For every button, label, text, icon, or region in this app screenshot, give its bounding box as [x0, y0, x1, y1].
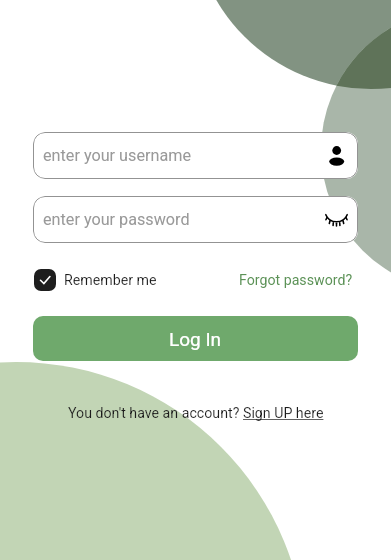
- staticText: Log In: [169, 328, 222, 350]
- button[interactable]: Remember me: [34, 269, 157, 291]
- button[interactable]: Log In: [33, 316, 358, 361]
- staticText: enter your username: [43, 146, 191, 165]
- other: Account: [324, 144, 348, 168]
- button[interactable]: enter your username: [33, 132, 358, 179]
- staticText: enter your password: [43, 210, 190, 229]
- staticText: Forgot password?: [239, 272, 353, 289]
- staticText: You don't have an account?: [68, 405, 243, 422]
- staticText: Remember me: [64, 272, 157, 289]
- button[interactable]: Forgot password?: [239, 272, 353, 289]
- staticText: Sign UP here: [243, 405, 324, 422]
- button[interactable]: enter your password: [33, 196, 358, 243]
- other: Show password: [324, 208, 348, 232]
- button[interactable]: Sign UP here: [243, 405, 324, 422]
